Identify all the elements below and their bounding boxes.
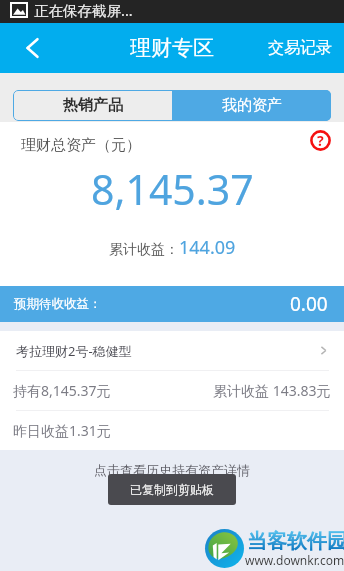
button[interactable]: 我的资产	[172, 90, 331, 121]
staticText: 理财专区	[130, 35, 214, 61]
staticText: 我的资产	[222, 96, 282, 115]
staticText: 理财总资产（元）	[21, 136, 141, 155]
staticText: 昨日收益1.31元	[13, 421, 111, 440]
button[interactable]: Back	[0, 23, 52, 73]
button[interactable]: 热销产品	[13, 90, 172, 121]
button[interactable]: 考拉理财2号-稳健型	[0, 331, 344, 370]
staticText: 考拉理财2号-稳健型	[16, 342, 132, 360]
staticText: 144.09	[179, 235, 236, 260]
staticText: 持有8,145.37元	[13, 381, 111, 400]
staticText: 已复制到剪贴板	[130, 482, 214, 497]
staticText: 0.00	[290, 291, 328, 317]
staticText: 热销产品	[63, 96, 123, 115]
staticText: 累计收益：	[109, 241, 179, 259]
staticText: 正在保存截屏...	[34, 0, 133, 20]
staticText: www.downkr.com	[245, 552, 344, 568]
staticText: 累计收益 143.83元	[213, 381, 331, 400]
staticText: ?	[317, 131, 324, 150]
button[interactable]: 点击查看历史持有资产详情	[94, 462, 250, 478]
staticText: 当客软件园	[247, 529, 344, 554]
button[interactable]: Help	[305, 125, 335, 155]
button[interactable]: 交易记录	[256, 26, 344, 70]
staticText: 交易记录	[268, 38, 332, 58]
staticText: 8,145.37	[91, 161, 254, 217]
staticText: 预期待收收益：	[14, 296, 102, 312]
